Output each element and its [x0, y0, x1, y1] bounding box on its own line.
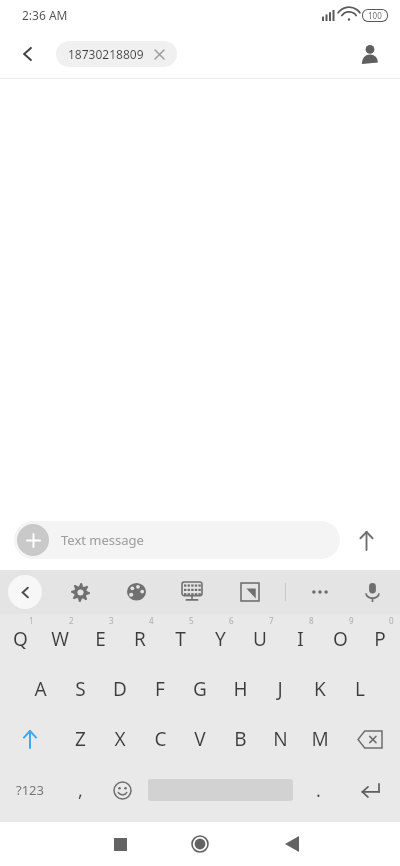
staticText: O [333, 626, 348, 652]
staticText: 3 [109, 615, 114, 626]
button[interactable]: F [140, 664, 180, 714]
button[interactable]: J [260, 664, 300, 714]
button[interactable]: I [280, 614, 320, 664]
button[interactable]: Contact [350, 34, 390, 74]
button[interactable]: E [80, 614, 120, 664]
button[interactable]: Close toolbar [8, 575, 42, 609]
staticText: U [253, 626, 267, 652]
button[interactable]: Recents [100, 824, 140, 864]
button[interactable]: Theme [118, 574, 154, 610]
staticText: . [316, 778, 321, 803]
button[interactable]: D [100, 664, 140, 714]
button[interactable]: B [220, 714, 260, 764]
button[interactable]: X [100, 714, 140, 764]
button[interactable]: ?123 [0, 764, 59, 816]
button[interactable]: C [140, 714, 180, 764]
staticText: K [314, 676, 326, 702]
staticText: 9 [349, 615, 354, 626]
button[interactable]: G [180, 664, 220, 714]
staticText: , [78, 778, 83, 803]
button[interactable]: R [120, 614, 160, 664]
staticText: 2 [69, 615, 74, 626]
staticText: Text message [61, 531, 144, 549]
staticText: E [95, 626, 106, 652]
staticText: I [297, 626, 304, 652]
button[interactable]: Enter [340, 764, 400, 816]
staticText: 5 [189, 615, 194, 626]
button[interactable]: Back [272, 824, 312, 864]
staticText: J [277, 676, 283, 702]
button[interactable]: N [260, 714, 300, 764]
button[interactable]: Shift [0, 714, 60, 764]
button[interactable]: U [240, 614, 280, 664]
staticText: A [34, 676, 47, 702]
staticText: ?123 [16, 781, 44, 799]
button[interactable]: Voice input [354, 574, 390, 610]
button[interactable]: S [60, 664, 100, 714]
button[interactable]: Home [178, 822, 222, 866]
button[interactable]: O [320, 614, 360, 664]
staticText: L [355, 676, 365, 702]
staticText: 6 [229, 615, 234, 626]
button[interactable]: Back [8, 34, 48, 74]
button[interactable]: Q [0, 614, 40, 664]
button[interactable]: Settings [62, 574, 98, 610]
staticText: V [194, 726, 206, 752]
button[interactable]: Emoji [101, 764, 144, 816]
button[interactable]: Send [340, 514, 392, 566]
button[interactable]: P [360, 614, 400, 664]
button[interactable]: Backspace [340, 714, 400, 764]
button[interactable]: M [300, 714, 340, 764]
staticText: H [233, 676, 248, 702]
button[interactable]: , [59, 764, 101, 816]
staticText: Z [75, 726, 86, 752]
button[interactable]: Keyboard layout [174, 574, 210, 610]
staticText: W [51, 626, 69, 652]
staticText: 8 [309, 615, 314, 626]
staticText: P [374, 626, 386, 652]
staticText: D [113, 676, 127, 702]
staticText: N [273, 726, 288, 752]
button[interactable]: . [297, 764, 340, 816]
button[interactable]: 18730218809 [56, 41, 177, 67]
staticText: 1 [29, 615, 34, 626]
staticText: 100 [368, 10, 382, 21]
staticText: C [154, 726, 167, 752]
button[interactable]: Y [200, 614, 240, 664]
staticText: X [114, 726, 126, 752]
staticText: 2:36 AM [22, 7, 68, 23]
button[interactable]: W [40, 614, 80, 664]
staticText: G [193, 676, 207, 702]
staticText: B [234, 726, 247, 752]
staticText: Y [215, 626, 226, 652]
button[interactable]: K [300, 664, 340, 714]
button[interactable]: V [180, 714, 220, 764]
button[interactable]: More [302, 574, 338, 610]
staticText: 4 [149, 615, 154, 626]
button[interactable]: Attach [14, 521, 340, 559]
staticText: M [311, 726, 329, 752]
staticText: Q [13, 626, 28, 652]
staticText: 18730218809 [68, 46, 144, 62]
staticText: 7 [269, 615, 274, 626]
button[interactable]: H [220, 664, 260, 714]
staticText: T [175, 626, 186, 652]
button[interactable]: A [20, 664, 60, 714]
staticText: 0 [389, 615, 394, 626]
button[interactable]: Z [60, 714, 100, 764]
button[interactable]: T [160, 614, 200, 664]
button[interactable]: Attach [17, 524, 49, 556]
staticText: S [75, 676, 86, 702]
button[interactable]: Resize [232, 574, 268, 610]
staticText: R [134, 626, 146, 652]
button[interactable]: L [340, 664, 380, 714]
staticText: F [155, 676, 165, 702]
